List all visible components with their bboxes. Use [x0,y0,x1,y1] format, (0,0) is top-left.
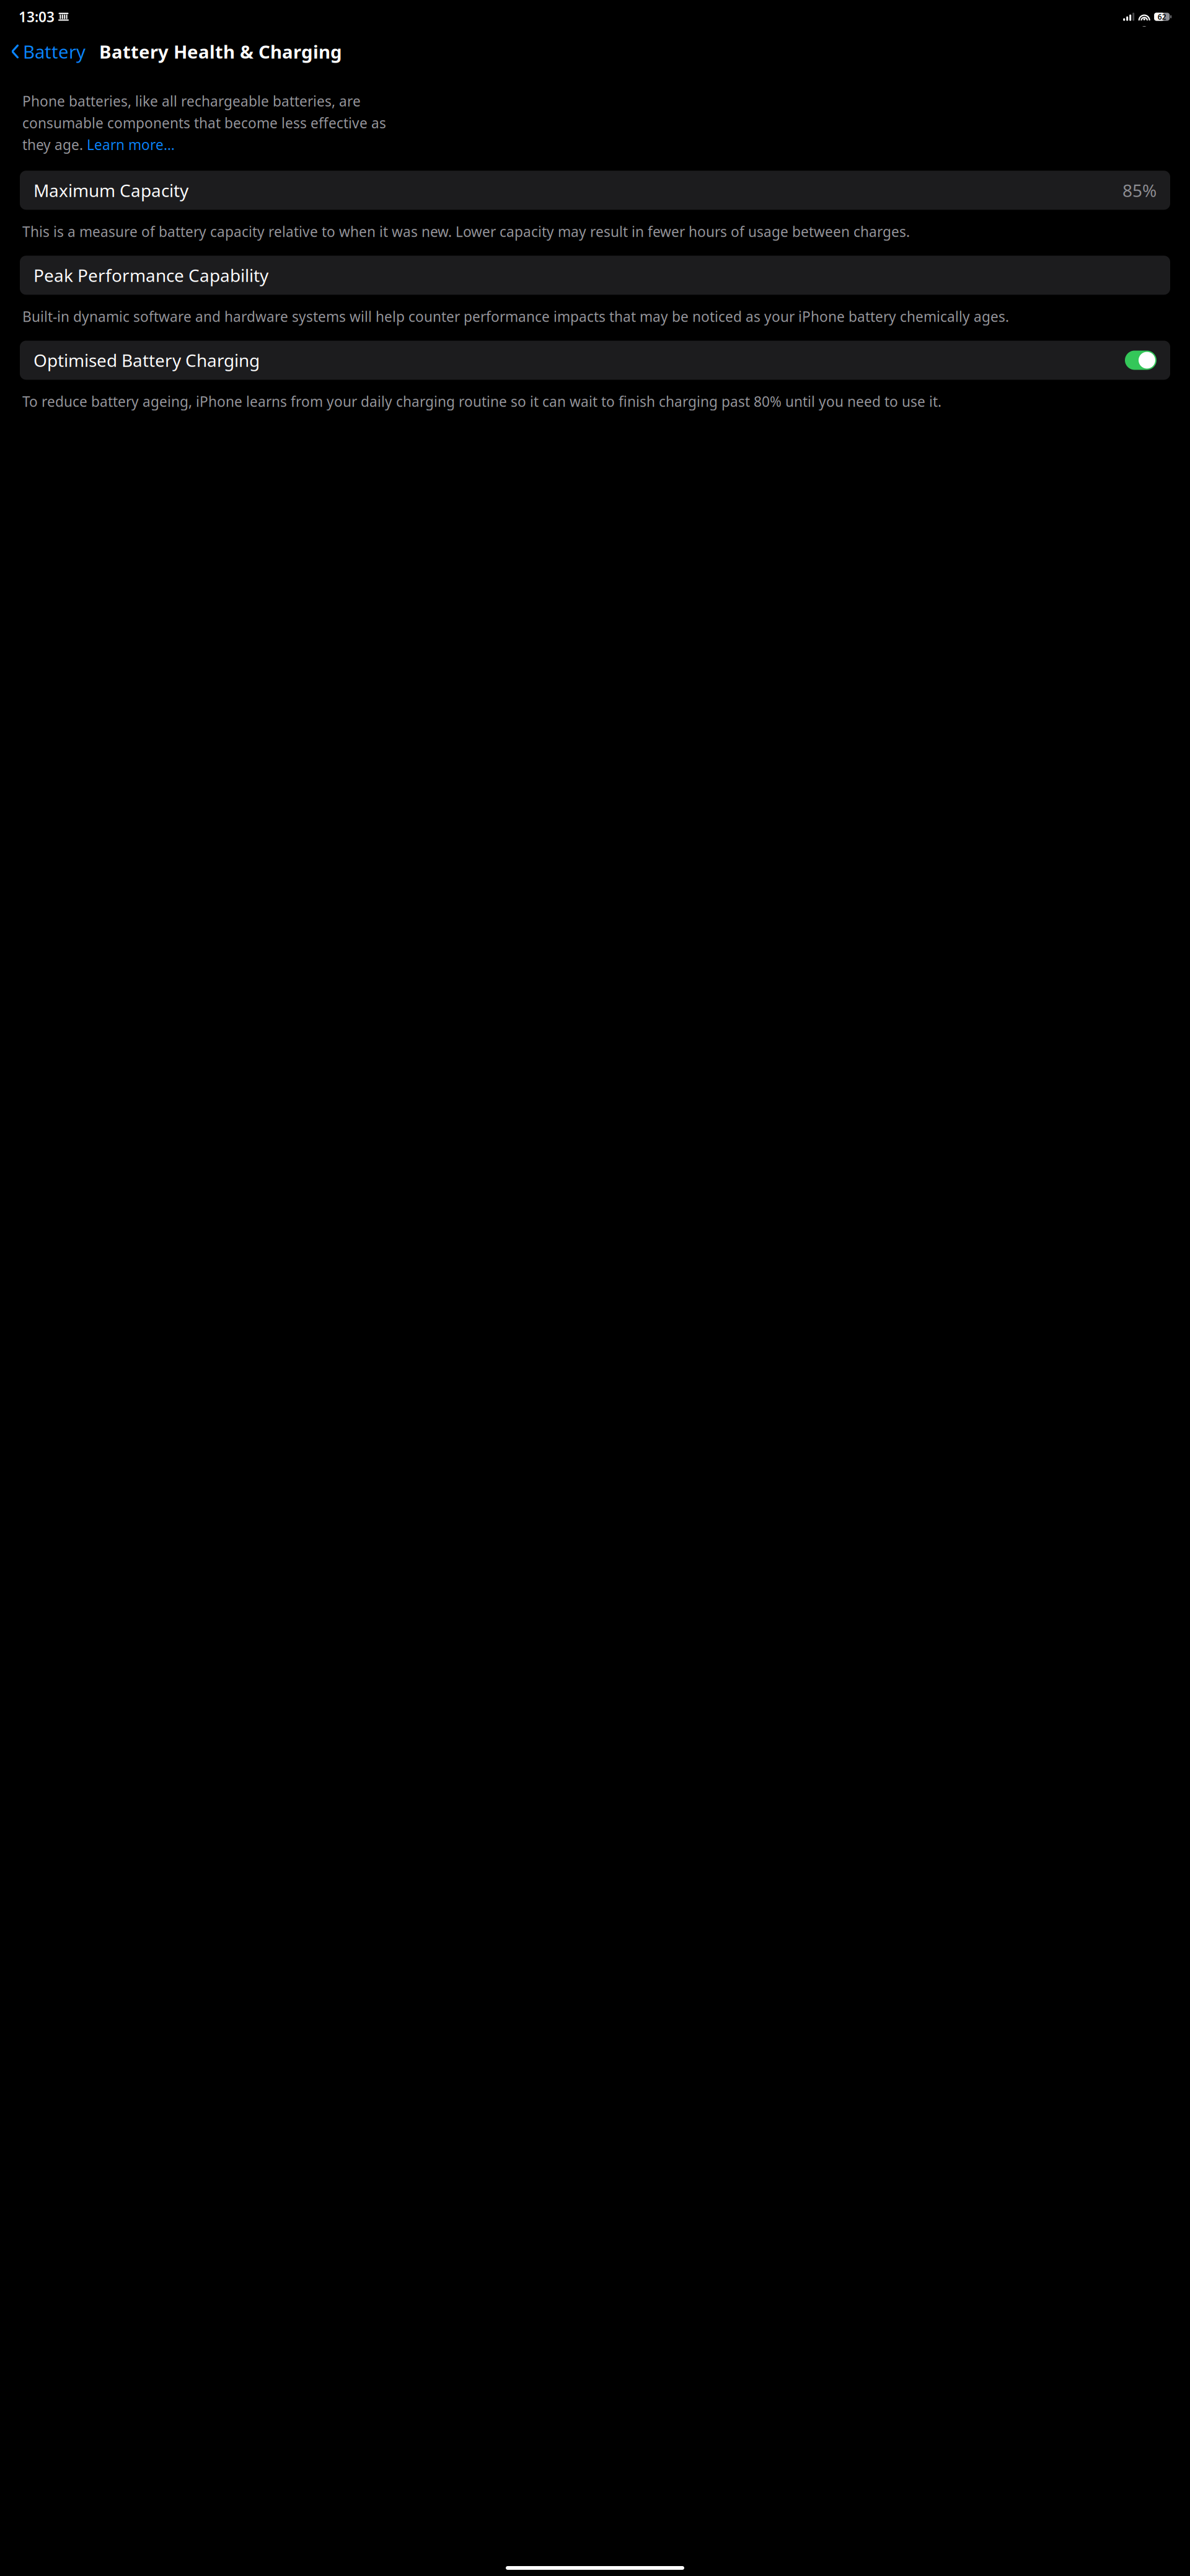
staticText: Phone batteries, like all rechargeable b… [22,92,361,110]
staticText: 62 [1158,12,1166,22]
staticText: consumable components that become less e… [22,114,386,132]
button[interactable]: Peak Performance Capability [0,256,1190,295]
staticText: they age. [22,135,87,154]
staticText: Learn more… [87,135,175,154]
staticText: Battery [23,39,86,64]
staticText: 85% [1122,179,1157,202]
staticText: Built-in dynamic software and hardware s… [22,307,1009,326]
button[interactable]: Learn more… [87,135,175,154]
staticText: Battery Health & Charging [99,39,342,64]
button[interactable]: Optimised Battery Charging [0,341,1190,380]
staticText: Maximum Capacity [33,179,188,202]
staticText: Optimised Battery Charging [33,349,260,372]
staticText: 13:03 [19,7,55,26]
button[interactable]: Battery [0,34,86,69]
button[interactable]: Maximum Capacity [0,171,1190,210]
staticText: Peak Performance Capability [33,264,268,287]
staticText: To reduce battery ageing, iPhone learns … [22,392,941,411]
staticText: This is a measure of battery capacity re… [22,222,910,241]
